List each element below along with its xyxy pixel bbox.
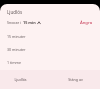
button[interactable]: Ångra bbox=[80, 20, 93, 26]
button[interactable]: 30 minuter bbox=[0, 43, 100, 56]
button[interactable]: Snooze i bbox=[7, 20, 41, 25]
staticText: Ljudlös bbox=[7, 9, 23, 15]
staticText: Ångra bbox=[80, 20, 93, 26]
staticText: 15 min bbox=[23, 20, 36, 25]
button[interactable]: Ljudlös bbox=[0, 70, 41, 89]
staticText: 30 minuter bbox=[7, 47, 26, 52]
staticText: 1 timme bbox=[7, 60, 21, 65]
staticText: 15 minuter bbox=[7, 34, 26, 39]
button[interactable]: 1 timme bbox=[0, 56, 100, 69]
button[interactable]: Stäng av bbox=[51, 70, 100, 89]
staticText: Stäng av bbox=[68, 77, 83, 82]
staticText: Ljudlös bbox=[14, 77, 27, 82]
button[interactable]: 15 minuter bbox=[0, 30, 100, 43]
staticText: Snooze i bbox=[7, 20, 23, 25]
